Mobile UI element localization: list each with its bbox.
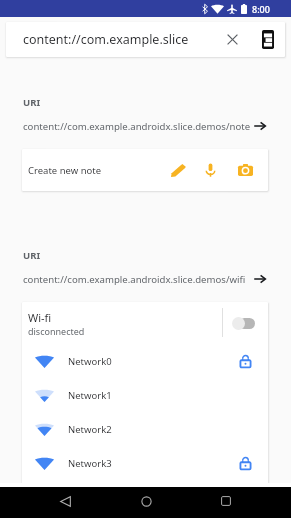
button[interactable]: Network2 xyxy=(22,412,268,446)
button[interactable]: Create new note xyxy=(22,149,268,191)
button[interactable]: Network0 xyxy=(22,344,268,378)
staticText: disconnected xyxy=(28,325,85,337)
staticText: content://com.example.androidx.slice.dem… xyxy=(23,273,254,286)
button[interactable]: Voice note xyxy=(192,149,228,191)
staticText: Network0 xyxy=(68,355,239,368)
button[interactable]: Show device xyxy=(252,22,283,57)
button[interactable]: Wi-fi toggle xyxy=(221,302,266,344)
button[interactable]: Wi-fi xyxy=(28,310,222,337)
staticText: URI xyxy=(23,96,41,109)
button[interactable]: Home xyxy=(134,489,158,513)
staticText: Network2 xyxy=(68,423,252,436)
staticText: content://com.example.androidx.slice.dem… xyxy=(23,120,254,133)
button[interactable]: content://com.example.slice xyxy=(6,22,285,57)
button[interactable]: Back xyxy=(53,489,77,513)
staticText: Create new note xyxy=(28,164,102,177)
staticText: 8:00 xyxy=(252,3,270,15)
staticText: Wi-fi xyxy=(28,310,52,325)
button[interactable]: Network1 xyxy=(22,378,268,412)
staticText: Network3 xyxy=(68,457,239,470)
button[interactable]: Clear xyxy=(214,22,250,57)
staticText: Network1 xyxy=(68,389,252,402)
button[interactable]: Camera note xyxy=(227,149,263,191)
button[interactable]: Network3 xyxy=(22,446,268,480)
button[interactable]: content://com.example.androidx.slice.dem… xyxy=(23,117,266,135)
staticText: content://com.example.slice xyxy=(23,31,189,48)
button[interactable]: Edit note xyxy=(160,149,196,191)
button[interactable]: content://com.example.androidx.slice.dem… xyxy=(23,270,266,288)
staticText: URI xyxy=(23,249,41,262)
button[interactable]: Recent apps xyxy=(214,489,238,513)
